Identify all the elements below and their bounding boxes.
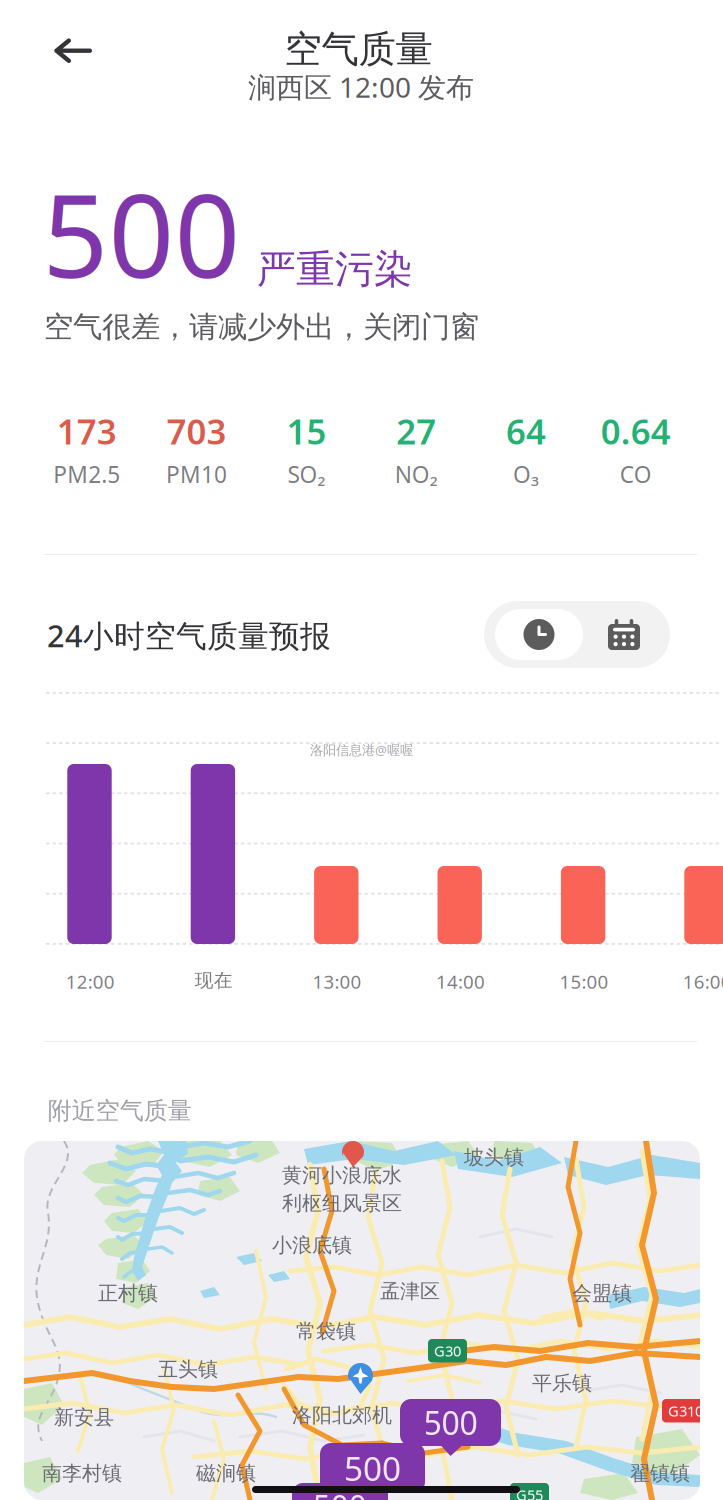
staticText: 小浪底镇 xyxy=(272,1233,352,1258)
staticText: G310 xyxy=(668,1401,703,1420)
staticText: 14:00 xyxy=(436,969,485,994)
staticText: NO₂ xyxy=(395,459,438,489)
staticText: 64 xyxy=(506,408,546,454)
staticText: 附近空气质量 xyxy=(48,1096,192,1125)
staticText: SO₂ xyxy=(287,459,325,489)
button[interactable]: Hourly forecast xyxy=(495,609,583,660)
button[interactable]: Back xyxy=(36,20,110,81)
staticText: 现在 xyxy=(195,969,233,992)
staticText: 黄河小浪底水 xyxy=(282,1163,402,1188)
staticText: O₃ xyxy=(513,459,539,489)
staticText: 空气很差，请减少外出，关闭门窗 xyxy=(44,309,479,345)
staticText: 新安县 xyxy=(54,1405,114,1430)
staticText: CO xyxy=(620,459,652,489)
staticText: 500 xyxy=(43,157,241,309)
staticText: 0.64 xyxy=(601,408,671,454)
staticText: 空气质量 xyxy=(285,26,433,72)
staticText: 12:00 xyxy=(66,969,115,994)
button[interactable]: Daily forecast xyxy=(584,609,664,660)
staticText: 500 xyxy=(313,1485,367,1500)
staticText: 翟镇镇 xyxy=(630,1461,690,1486)
staticText: G30 xyxy=(434,1341,461,1360)
staticText: 27 xyxy=(396,408,436,454)
staticText: 严重污染 xyxy=(257,246,413,293)
staticText: 洛阳信息港@喔喔 xyxy=(310,741,413,759)
staticText: 正村镇 xyxy=(98,1281,158,1306)
staticText: 洛阳北郊机 xyxy=(292,1403,392,1428)
staticText: PM10 xyxy=(166,459,227,489)
staticText: 16:00 xyxy=(683,969,723,994)
staticText: 500 xyxy=(344,1446,401,1490)
staticText: 173 xyxy=(57,408,117,454)
staticText: PM2.5 xyxy=(53,459,120,489)
staticText: 15:00 xyxy=(559,969,608,994)
staticText: 磁涧镇 xyxy=(196,1461,256,1486)
staticText: 利枢纽风景区 xyxy=(282,1191,402,1216)
staticText: 坡头镇 xyxy=(464,1145,524,1170)
staticText: G55 xyxy=(516,1485,543,1500)
staticText: 会盟镇 xyxy=(572,1281,632,1306)
staticText: 24小时空气质量预报 xyxy=(47,615,331,656)
staticText: 涧西区 12:00 发布 xyxy=(248,68,474,105)
staticText: 五头镇 xyxy=(158,1357,218,1382)
staticText: 15 xyxy=(286,408,326,454)
staticText: 平乐镇 xyxy=(532,1371,592,1396)
staticText: 703 xyxy=(167,408,227,454)
staticText: 500 xyxy=(423,1401,477,1444)
staticText: 南李村镇 xyxy=(42,1461,122,1486)
staticText: 13:00 xyxy=(313,969,362,994)
staticText: 孟津区 xyxy=(380,1279,440,1304)
staticText: 常袋镇 xyxy=(296,1319,356,1344)
